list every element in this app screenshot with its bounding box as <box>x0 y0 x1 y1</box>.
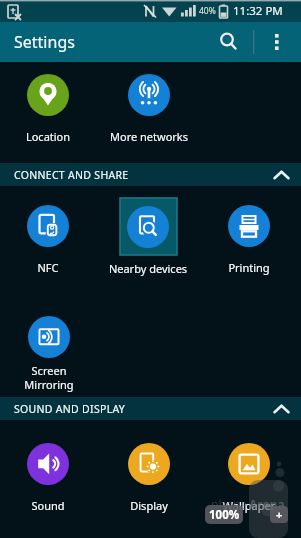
staticText: CONNECT AND SHARE <box>14 168 129 182</box>
staticText: 40% <box>199 5 216 17</box>
button[interactable]: Screen Mirroring <box>1 308 97 390</box>
staticText: Display <box>101 498 197 513</box>
button[interactable]: Nearby devices <box>100 198 196 280</box>
button[interactable]: Sound <box>0 435 96 517</box>
button[interactable]: SOUND AND DISPLAY <box>0 397 301 420</box>
button[interactable]: Display <box>101 435 197 517</box>
staticText: 11:32 PM <box>233 3 283 19</box>
button[interactable]: Location <box>0 66 96 148</box>
button[interactable]: 100% <box>205 505 243 524</box>
staticText: Nearby devices <box>100 261 196 276</box>
button[interactable]: Printing <box>201 197 297 279</box>
staticText: SOUND AND DISPLAY <box>14 402 126 416</box>
button[interactable] <box>212 22 244 62</box>
staticText: NFC <box>0 260 96 275</box>
staticText: Settings <box>14 31 75 53</box>
button[interactable]: + <box>270 506 288 523</box>
staticText: Wallpaper <box>201 498 297 513</box>
staticText: 100% <box>209 507 240 523</box>
button[interactable]: Wallpaper <box>201 435 297 517</box>
staticText: phone <box>211 496 248 512</box>
button[interactable]: NFC <box>0 197 96 279</box>
staticText: Sound <box>0 498 96 513</box>
button[interactable] <box>262 22 292 62</box>
staticText: Arena <box>249 496 285 512</box>
staticText: Location <box>0 129 96 144</box>
staticText: More networks <box>101 129 197 144</box>
button[interactable]: More networks <box>101 66 197 148</box>
button[interactable]: CONNECT AND SHARE <box>0 163 301 186</box>
staticText: Screen Mirroring <box>1 363 97 392</box>
staticText: Printing <box>201 260 297 275</box>
staticText: + <box>276 507 283 522</box>
